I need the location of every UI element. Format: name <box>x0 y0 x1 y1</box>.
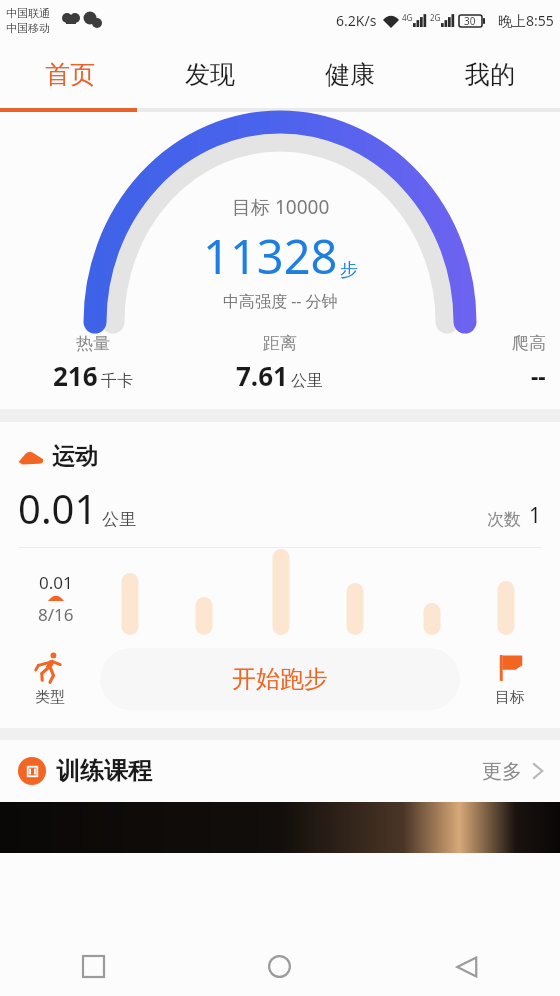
button[interactable]: Type <box>0 651 100 707</box>
staticText: 晚上8:55 <box>498 11 554 30</box>
button[interactable]: 首页 <box>0 40 140 108</box>
staticText: 7.61 <box>236 358 288 393</box>
staticText: 千卡 <box>101 371 133 391</box>
button[interactable]: 距离 <box>186 333 373 393</box>
staticText: 目标 <box>495 688 525 707</box>
other: Sport <box>18 448 44 466</box>
button[interactable]: Back <box>373 937 560 996</box>
button[interactable]: 训练课程 <box>18 740 544 802</box>
staticText: 0.01 <box>18 481 98 535</box>
staticText: 热量 <box>76 333 110 354</box>
staticText: 公里 <box>102 509 136 530</box>
button[interactable]: Goal <box>460 651 560 707</box>
staticText: 中高强度 -- 分钟 <box>223 290 338 312</box>
staticText: 30 <box>464 14 476 28</box>
button[interactable] <box>0 802 560 853</box>
button[interactable]: 热量 <box>0 333 186 393</box>
staticText: 次数 <box>487 509 521 530</box>
button[interactable]: Sport <box>18 442 560 471</box>
staticText: 1 <box>529 501 542 530</box>
other: More <box>532 760 544 782</box>
staticText: 运动 <box>52 442 98 471</box>
button[interactable]: 开始跑步 <box>100 648 460 710</box>
staticText: 开始跑步 <box>232 664 328 694</box>
staticText: 4G <box>402 12 413 23</box>
staticText: 爬高 <box>512 333 546 354</box>
staticText: 类型 <box>35 688 65 707</box>
staticText: 216 <box>53 358 98 393</box>
button[interactable]: 我的 <box>420 40 560 108</box>
staticText: 发现 <box>185 59 235 90</box>
staticText: 中国联通 <box>6 6 50 20</box>
other: Goal <box>493 651 527 685</box>
staticText: 更多 <box>482 759 522 784</box>
staticText: 中国移动 <box>6 21 50 35</box>
staticText: -- <box>531 360 546 391</box>
staticText: 8/16 <box>38 603 74 626</box>
staticText: 我的 <box>465 59 515 90</box>
button[interactable]: 健康 <box>280 40 420 108</box>
other: Type <box>33 651 67 685</box>
staticText: 健康 <box>325 59 375 90</box>
staticText: 11328 <box>203 224 338 288</box>
staticText: 公里 <box>291 371 323 391</box>
staticText: 步 <box>340 259 358 282</box>
button[interactable]: 发现 <box>140 40 280 108</box>
button[interactable]: Home <box>186 937 373 996</box>
staticText: 距离 <box>263 333 297 354</box>
button[interactable]: Recents <box>0 937 186 996</box>
staticText: 首页 <box>45 59 95 90</box>
staticText: 2G <box>430 12 441 23</box>
staticText: 6.2K/s <box>336 11 377 30</box>
staticText: 0.01 <box>39 571 73 594</box>
button[interactable]: 爬高 <box>373 333 546 391</box>
staticText: 训练课程 <box>56 756 152 786</box>
staticText: 目标 10000 <box>232 194 330 220</box>
